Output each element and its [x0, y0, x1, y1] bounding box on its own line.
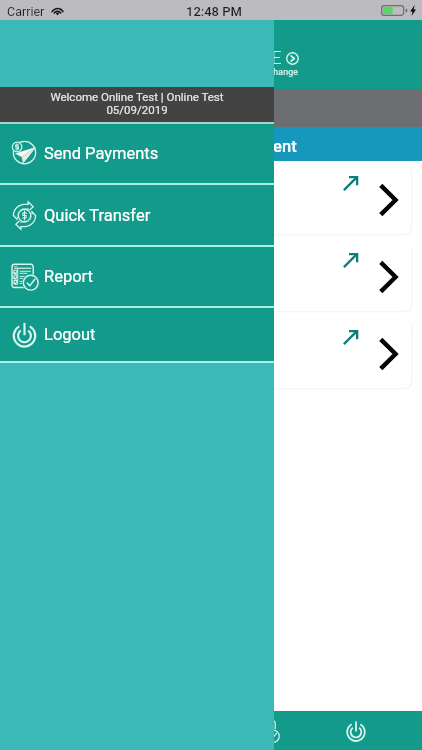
button[interactable]: Send Payments — [0, 124, 274, 183]
staticText: ONE — [246, 48, 283, 69]
button[interactable] — [11, 243, 411, 311]
button[interactable]: Quick Transfer — [0, 185, 274, 245]
staticText: Send Payments — [44, 144, 159, 163]
staticText: Report — [44, 267, 93, 286]
staticText: 05/09/2019 — [106, 103, 168, 116]
button[interactable]: Report — [0, 247, 274, 306]
button[interactable]: Logout — [344, 719, 368, 743]
staticText: Logout — [44, 325, 96, 344]
staticText: Send Payment — [190, 137, 297, 156]
button[interactable]: Report — [256, 719, 280, 743]
staticText: 12:48 PM — [186, 4, 242, 19]
button[interactable]: Logout — [0, 308, 274, 361]
button[interactable] — [11, 166, 411, 234]
staticText: Exchange — [259, 67, 299, 77]
staticText: Carrier — [7, 4, 45, 19]
staticText: Quick Transfer — [44, 206, 151, 225]
staticText: Welcome Online Test | Online Test — [50, 90, 224, 103]
button[interactable] — [11, 320, 411, 388]
